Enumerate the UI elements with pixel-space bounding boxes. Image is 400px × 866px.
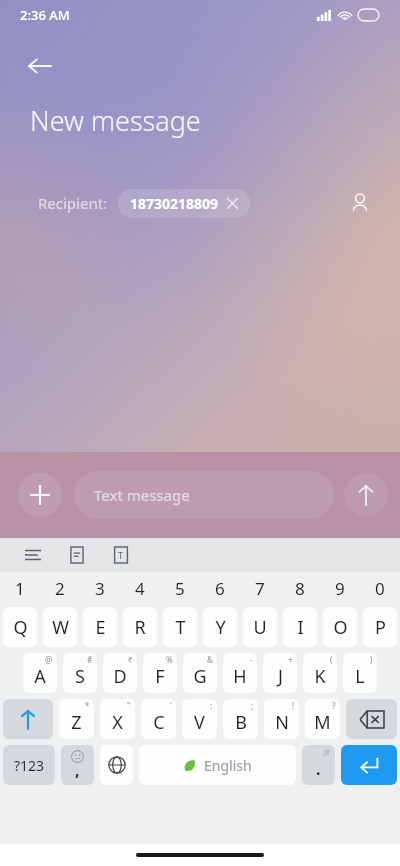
staticText: 2 bbox=[55, 577, 65, 600]
button[interactable]: P bbox=[363, 607, 397, 647]
button[interactable]: Q bbox=[3, 607, 37, 647]
staticText: D bbox=[113, 664, 127, 689]
staticText: & bbox=[207, 654, 213, 665]
button[interactable]: ! bbox=[264, 699, 299, 739]
button[interactable]: 3 bbox=[80, 572, 120, 604]
staticText: 3 bbox=[95, 577, 105, 600]
button[interactable]: & bbox=[183, 653, 217, 693]
button[interactable]: 5 bbox=[160, 572, 200, 604]
button[interactable]: Emoji bbox=[61, 745, 94, 785]
button[interactable]: - bbox=[223, 653, 257, 693]
button[interactable]: Attach bbox=[18, 473, 62, 517]
staticText: B bbox=[235, 710, 247, 735]
staticText: N bbox=[275, 710, 289, 735]
button[interactable]: 4 bbox=[120, 572, 160, 604]
staticText: 5 bbox=[175, 577, 185, 600]
button[interactable]: ?123 bbox=[3, 745, 55, 785]
staticText: 1 bbox=[15, 577, 25, 600]
button[interactable]: * bbox=[59, 699, 94, 739]
button[interactable]: ₹ bbox=[103, 653, 137, 693]
staticText: ) bbox=[370, 654, 373, 665]
staticText: C bbox=[153, 710, 165, 735]
button[interactable]: E bbox=[83, 607, 117, 647]
staticText: ?123 bbox=[14, 756, 45, 775]
staticText: , bbox=[75, 759, 80, 781]
staticText: - bbox=[250, 654, 253, 665]
button[interactable]: Text options bbox=[108, 542, 134, 568]
button[interactable]: 1 bbox=[0, 572, 40, 604]
staticText: " bbox=[127, 700, 131, 711]
staticText: 9 bbox=[335, 577, 345, 600]
button[interactable]: Back bbox=[18, 44, 62, 88]
staticText: V bbox=[194, 710, 205, 735]
staticText: ' bbox=[170, 700, 172, 711]
button[interactable]: Shift bbox=[3, 699, 53, 739]
button[interactable]: I bbox=[283, 607, 317, 647]
button[interactable]: % bbox=[143, 653, 177, 693]
button[interactable]: Enter bbox=[341, 745, 397, 785]
button[interactable]: Contacts bbox=[340, 183, 380, 223]
button[interactable]: : bbox=[182, 699, 217, 739]
staticText: G bbox=[193, 664, 207, 689]
button[interactable]: 9 bbox=[320, 572, 360, 604]
staticText: ! bbox=[292, 700, 295, 711]
button[interactable]: 8 bbox=[280, 572, 320, 604]
button[interactable]: R bbox=[123, 607, 157, 647]
staticText: # bbox=[87, 654, 93, 665]
staticText: New message bbox=[30, 102, 201, 139]
button[interactable]: # bbox=[63, 653, 97, 693]
button[interactable]: T bbox=[163, 607, 197, 647]
button[interactable]: " bbox=[100, 699, 135, 739]
staticText: * bbox=[85, 700, 90, 711]
button[interactable]: Menu bbox=[20, 542, 46, 568]
button[interactable]: Send bbox=[344, 473, 388, 517]
staticText: ? bbox=[332, 700, 336, 711]
button[interactable]: Y bbox=[203, 607, 237, 647]
staticText: T bbox=[175, 615, 186, 640]
staticText: 8 bbox=[295, 577, 305, 600]
button[interactable]: English bbox=[139, 745, 296, 785]
button[interactable]: Change language bbox=[100, 745, 133, 785]
button[interactable]: ( bbox=[303, 653, 337, 693]
staticText: . bbox=[316, 758, 321, 780]
staticText: E bbox=[95, 615, 106, 640]
button[interactable]: @ bbox=[23, 653, 57, 693]
staticText: M bbox=[314, 710, 331, 735]
button[interactable]: ' bbox=[141, 699, 176, 739]
staticText: 18730218809 bbox=[130, 194, 219, 213]
staticText: H bbox=[233, 664, 247, 689]
button[interactable]: Clipboard bbox=[64, 542, 90, 568]
button[interactable]: 6 bbox=[200, 572, 240, 604]
button[interactable]: 7 bbox=[240, 572, 280, 604]
staticText: Y bbox=[215, 615, 226, 640]
staticText: ,!? bbox=[323, 748, 330, 758]
staticText: K bbox=[314, 664, 326, 689]
button[interactable]: ? bbox=[305, 699, 340, 739]
staticText: 0 bbox=[375, 577, 385, 600]
staticText: : bbox=[210, 700, 213, 711]
button[interactable]: + bbox=[263, 653, 297, 693]
button[interactable]: ; bbox=[223, 699, 258, 739]
button[interactable]: Text message bbox=[74, 471, 334, 519]
button[interactable]: Backspace bbox=[346, 699, 397, 739]
staticText: @ bbox=[45, 654, 53, 665]
button[interactable]: O bbox=[323, 607, 357, 647]
staticText: % bbox=[166, 654, 173, 665]
staticText: S bbox=[75, 664, 85, 689]
button[interactable]: 2 bbox=[40, 572, 80, 604]
staticText: R bbox=[134, 615, 146, 640]
staticText: U bbox=[253, 615, 267, 640]
staticText: ₹ bbox=[128, 654, 133, 665]
button[interactable]: 18730218809 bbox=[118, 189, 250, 218]
staticText: J bbox=[278, 664, 283, 689]
staticText: I bbox=[297, 615, 304, 640]
button[interactable]: W bbox=[43, 607, 77, 647]
button[interactable]: ,!? bbox=[302, 745, 335, 785]
staticText: Q bbox=[13, 615, 28, 640]
button[interactable]: U bbox=[243, 607, 277, 647]
staticText: + bbox=[288, 654, 293, 665]
button[interactable]: 0 bbox=[360, 572, 400, 604]
staticText: O bbox=[333, 615, 348, 640]
button[interactable]: ) bbox=[343, 653, 377, 693]
staticText: English bbox=[204, 756, 252, 775]
